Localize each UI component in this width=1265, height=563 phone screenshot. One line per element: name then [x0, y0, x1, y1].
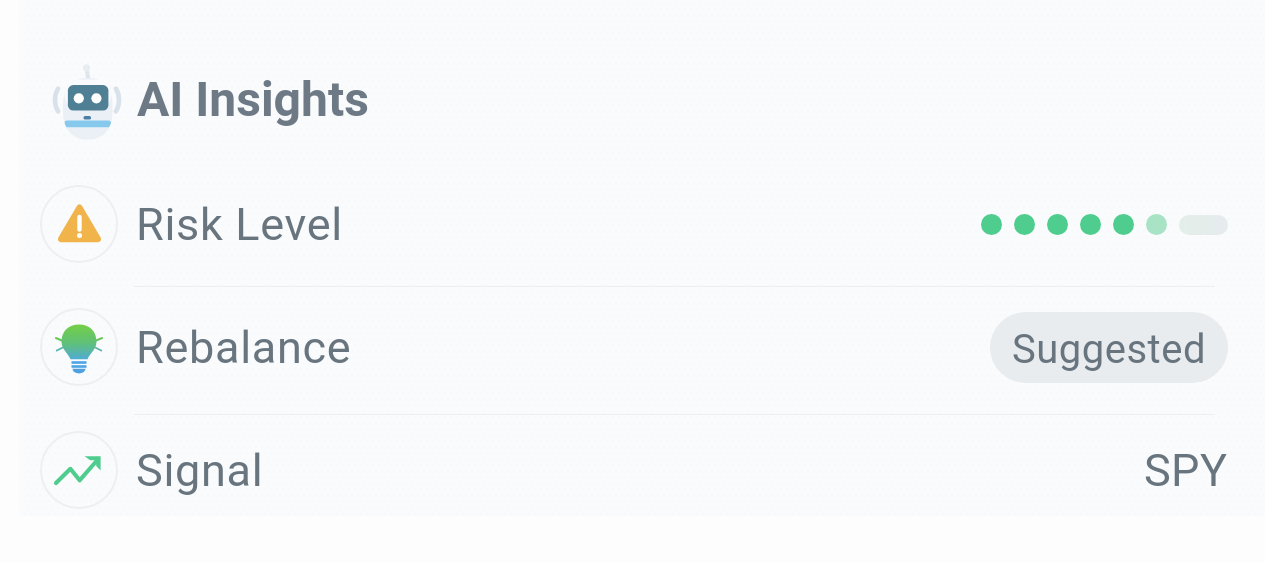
other: AI robot — [54, 64, 120, 140]
button[interactable]: Risk Level — [19, 174, 1265, 274]
staticText: Signal — [136, 444, 264, 497]
staticText: Risk Level — [136, 198, 343, 251]
staticText: Suggested — [1012, 326, 1206, 373]
staticText: Rebalance — [136, 321, 352, 374]
button[interactable]: Signal — [19, 420, 1265, 520]
staticText: AI Insights — [137, 71, 369, 127]
button[interactable]: Rebalance — [19, 297, 1265, 397]
button[interactable]: AI robot — [19, 0, 1265, 162]
button[interactable]: Suggested — [990, 312, 1228, 383]
staticText: SPY — [1144, 444, 1228, 497]
